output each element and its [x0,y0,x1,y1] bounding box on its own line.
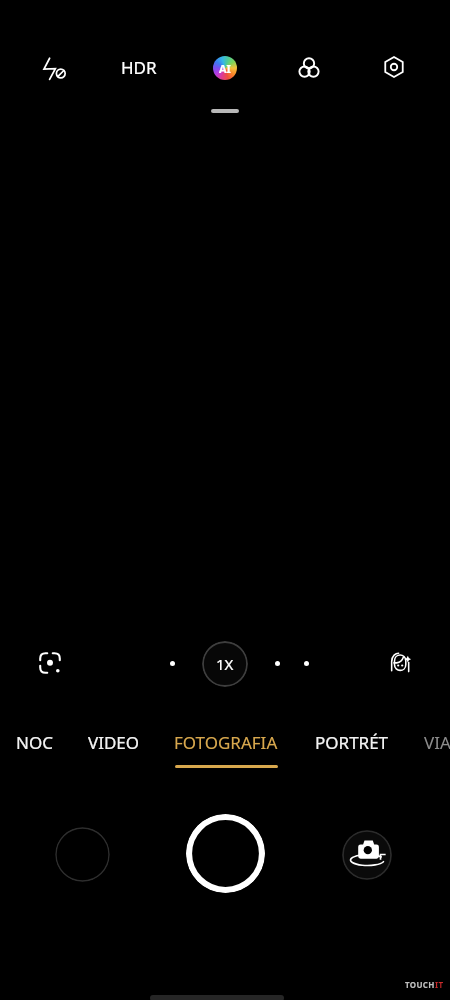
staticText: NOC [16,731,53,754]
staticText: TOUCH [405,979,435,990]
button[interactable]: Shutter [186,814,265,893]
button[interactable]: PORTRÉT [315,731,389,765]
button[interactable]: VIDEO [88,731,140,765]
button[interactable]: Switch camera [342,830,392,880]
button[interactable]: FOTOGRAFIA [174,731,278,768]
button[interactable]: Zoom 1X [202,641,248,687]
button[interactable]: VIA [424,731,450,765]
button[interactable]: Flash off [31,50,67,86]
button[interactable]: AI scene detection [202,45,247,90]
staticText: PORTRÉT [315,731,389,754]
staticText: IT [435,979,444,990]
button[interactable]: Google Lens [32,645,68,681]
button[interactable]: Settings [376,49,412,85]
staticText: FOTOGRAFIA [174,731,278,754]
button[interactable]: Beauty filter [382,644,418,680]
staticText: VIDEO [88,731,140,754]
staticText: AI [219,61,231,76]
staticText: VIA [424,731,450,754]
staticText: HDR [121,56,157,79]
staticText: 1X [216,654,234,674]
button[interactable]: NOC [16,731,53,765]
button[interactable]: Gallery [55,827,110,882]
button[interactable]: HDR [117,49,161,85]
button[interactable]: Filters [291,50,327,86]
